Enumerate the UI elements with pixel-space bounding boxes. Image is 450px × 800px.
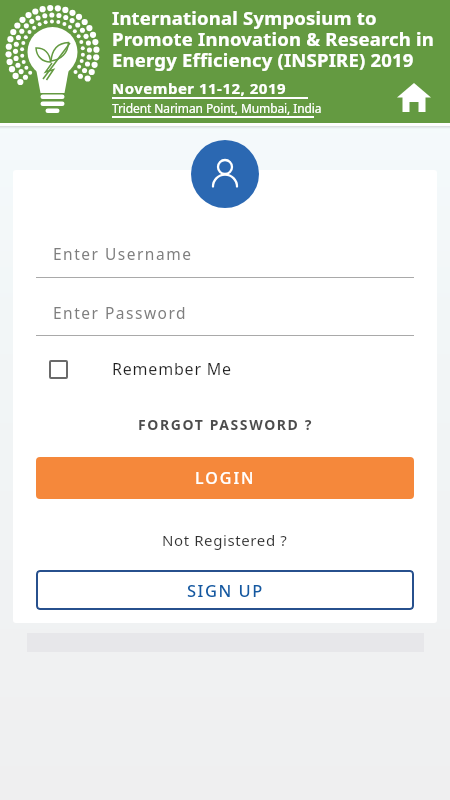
staticText: Trident Nariman Point, Mumbai, India	[112, 100, 322, 116]
staticText: International Symposium to Promote Innov…	[112, 5, 434, 72]
button[interactable]: FORGOT PASSWORD ?	[0, 413, 450, 435]
button[interactable]	[49, 360, 68, 379]
staticText: Enter Username	[53, 243, 193, 264]
staticText: Not Registered ?	[162, 530, 288, 550]
button[interactable]: LOGIN	[36, 457, 414, 499]
staticText: LOGIN	[195, 467, 256, 489]
button[interactable]: SIGN UP	[36, 570, 414, 610]
staticText: Enter Password	[53, 302, 188, 323]
staticText: November 11-12, 2019	[112, 78, 287, 98]
staticText: FORGOT PASSWORD ?	[138, 415, 313, 434]
staticText: SIGN UP	[187, 579, 264, 601]
button[interactable]: Enter Password	[36, 293, 414, 331]
staticText: Remember Me	[112, 358, 232, 380]
button[interactable]: Enter Username	[36, 234, 414, 272]
button[interactable]	[191, 140, 259, 208]
button[interactable]	[398, 83, 430, 113]
